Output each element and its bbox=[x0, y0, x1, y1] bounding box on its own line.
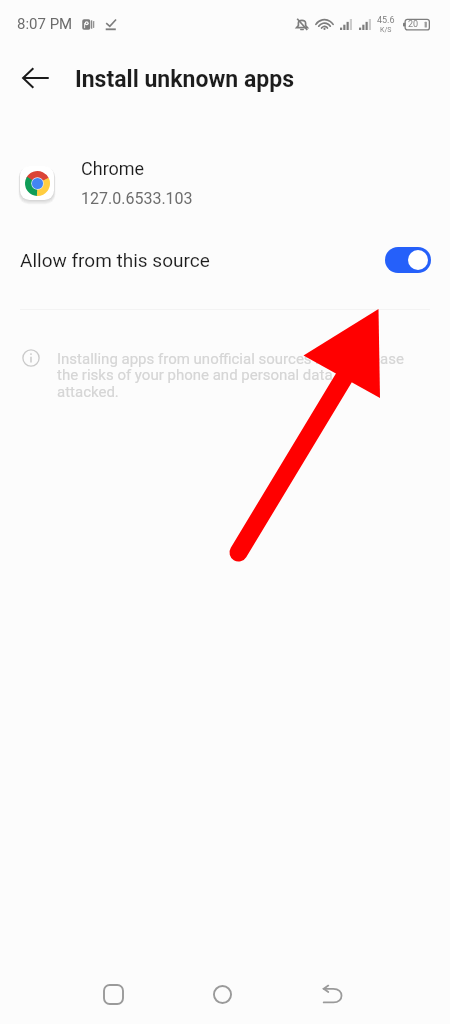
button[interactable]: Back bbox=[12, 54, 59, 101]
staticText: 127.0.6533.103 bbox=[81, 189, 193, 208]
staticText: Install unknown apps bbox=[75, 66, 294, 93]
staticText: K/S bbox=[380, 26, 392, 34]
staticText: Installing apps from unofficial sources … bbox=[57, 350, 415, 401]
button[interactable]: Allow from this source bbox=[0, 236, 450, 284]
staticText: 20 bbox=[408, 19, 419, 30]
button[interactable]: Chrome bbox=[0, 155, 450, 211]
staticText: Allow from this source bbox=[20, 249, 210, 271]
staticText: 8:07 PM bbox=[17, 15, 73, 33]
staticText: 45.6 bbox=[377, 15, 395, 26]
button[interactable]: Allow from this source toggle bbox=[385, 247, 431, 273]
button[interactable]: Home bbox=[192, 964, 252, 1024]
button[interactable]: Recents bbox=[83, 964, 143, 1024]
button[interactable]: Back bbox=[302, 964, 362, 1024]
staticText: Chrome bbox=[81, 158, 145, 179]
